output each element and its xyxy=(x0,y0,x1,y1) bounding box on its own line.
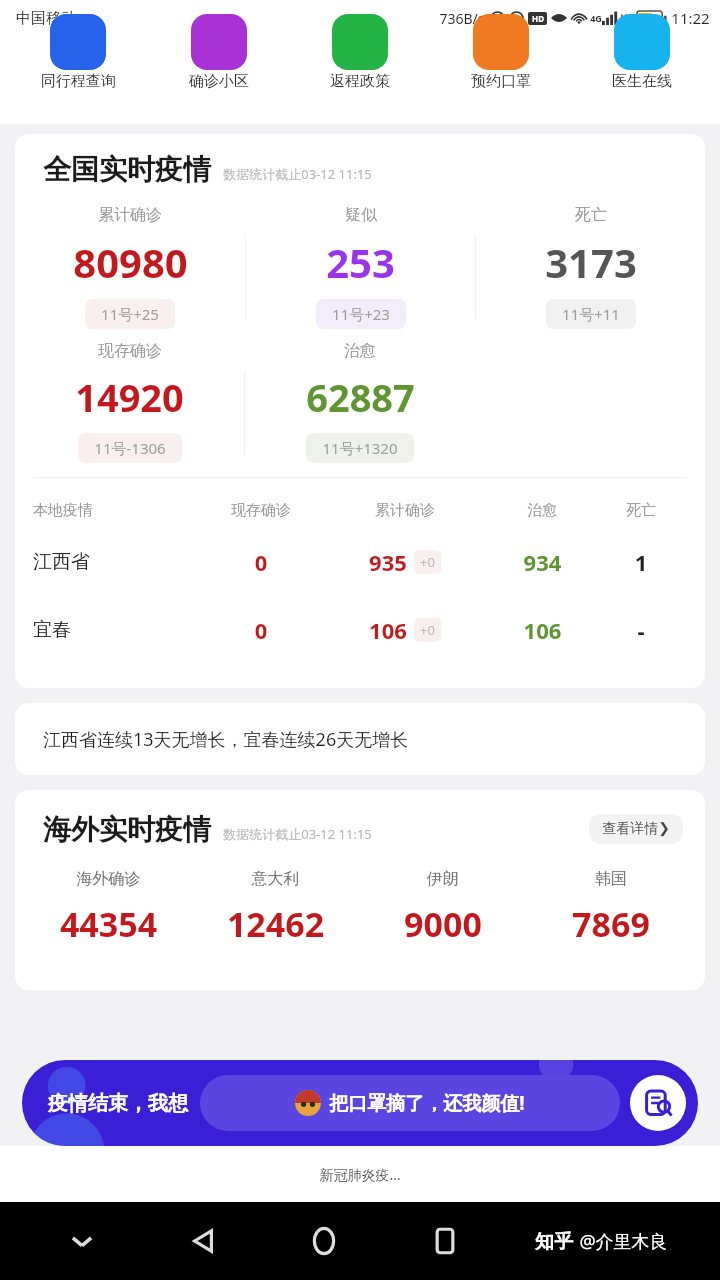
staticText: 3173 xyxy=(545,235,637,289)
button[interactable]: 疑似 xyxy=(246,205,475,329)
button[interactable]: 累计确诊 xyxy=(15,205,245,329)
staticText: 同行程查询 xyxy=(41,72,116,91)
staticText: 治愈 xyxy=(344,341,376,361)
staticText: 预约口罩 xyxy=(471,72,531,91)
staticText: 累计确诊 xyxy=(98,205,162,225)
staticText: - xyxy=(595,615,687,645)
staticText: 疫情结束，我想 xyxy=(48,1091,188,1116)
staticText: 医生在线 xyxy=(612,72,672,91)
button[interactable]: 江西省 xyxy=(15,528,705,596)
staticText: 死亡 xyxy=(595,501,687,520)
staticText: 现存确诊 xyxy=(98,341,162,361)
staticText: 意大利 xyxy=(192,869,359,889)
staticText: 1 xyxy=(595,547,687,577)
button[interactable]: 返回 xyxy=(142,1202,263,1280)
staticText: 把口罩摘了，还我颜值! xyxy=(329,1090,525,1116)
staticText: 62887 xyxy=(306,371,415,423)
staticText: 疑似 xyxy=(345,205,377,225)
staticText: 现存确诊 xyxy=(202,501,320,520)
staticText: 本地疫情 xyxy=(33,501,202,520)
staticText: 9000 xyxy=(359,901,527,947)
button[interactable]: 死亡 xyxy=(476,205,705,329)
button[interactable]: 宜春 xyxy=(15,596,705,664)
staticText: 0 xyxy=(202,615,320,645)
staticText: 宜春 xyxy=(33,618,202,642)
staticText: 0 xyxy=(202,547,320,577)
staticText: 数据统计截止03-12 11:15 xyxy=(223,165,372,183)
staticText: 确诊小区 xyxy=(189,72,249,91)
button[interactable]: 返程政策 xyxy=(289,36,430,111)
staticText: 返程政策 xyxy=(330,72,390,91)
staticText: 数据统计截止03-12 11:15 xyxy=(223,825,372,843)
staticText: 106 xyxy=(369,615,407,645)
button[interactable]: 收起 xyxy=(22,1202,142,1280)
staticText: 80980 xyxy=(73,235,188,289)
staticText: 11号+1320 xyxy=(322,438,398,458)
staticText: 查看详情❯ xyxy=(602,820,670,838)
staticText: 11号+23 xyxy=(332,304,390,324)
button[interactable]: 治愈 xyxy=(245,341,475,463)
button[interactable]: 江西省连续13天无增长，宜春连续26天无增长 xyxy=(15,703,705,775)
button[interactable]: 最近任务 xyxy=(384,1202,505,1280)
staticText: 253 xyxy=(326,235,395,289)
staticText: 累计确诊 xyxy=(320,501,490,520)
button[interactable]: 确诊小区 xyxy=(148,36,289,111)
staticText: 106 xyxy=(490,615,595,645)
button[interactable]: 现存确诊 xyxy=(15,341,244,463)
staticText: 海外确诊 xyxy=(25,869,192,889)
staticText: 知乎 xyxy=(535,1230,573,1254)
staticText: 死亡 xyxy=(575,205,607,225)
staticText: +0 xyxy=(420,553,435,571)
staticText: 全国实时疫情 xyxy=(43,152,211,187)
staticText: 江西省连续13天无增长，宜春连续26天无增长 xyxy=(43,727,409,752)
staticText: 14920 xyxy=(75,371,184,423)
staticText: 11:22 xyxy=(671,8,710,28)
staticText: 44354 xyxy=(25,901,192,947)
staticText: 伊朗 xyxy=(359,869,527,889)
staticText: HD xyxy=(532,13,544,24)
button[interactable]: 同行程查询 xyxy=(8,36,148,111)
button[interactable]: 查看详情❯ xyxy=(589,814,683,844)
staticText: 12462 xyxy=(192,901,359,947)
staticText: 韩国 xyxy=(527,869,695,889)
button[interactable]: 医生在线 xyxy=(571,36,712,111)
staticText: 11号+25 xyxy=(101,304,159,324)
button[interactable]: 提交心愿 xyxy=(630,1075,686,1131)
staticText: @介里木良 xyxy=(579,1229,668,1254)
staticText: 935 xyxy=(369,547,407,577)
staticText: 11号-1306 xyxy=(94,438,166,458)
staticText: 736B/s xyxy=(439,9,485,28)
staticText: 4G xyxy=(590,12,602,24)
button[interactable]: 主页 xyxy=(263,1202,384,1280)
staticText: 海外实时疫情 xyxy=(43,812,211,847)
button[interactable]: 把口罩摘了，还我颜值! xyxy=(200,1075,620,1131)
staticText: +0 xyxy=(420,621,435,639)
staticText: 7869 xyxy=(527,901,695,947)
staticText: 11号+11 xyxy=(562,304,620,324)
staticText: 新冠肺炎疫… xyxy=(319,1165,401,1184)
staticText: 江西省 xyxy=(33,550,202,574)
staticText: 934 xyxy=(490,547,595,577)
button[interactable]: 预约口罩 xyxy=(430,36,571,111)
button[interactable]: 疫情结束，我想 xyxy=(22,1060,698,1146)
staticText: 治愈 xyxy=(490,501,595,520)
staticText: 中国移动 xyxy=(16,9,76,28)
